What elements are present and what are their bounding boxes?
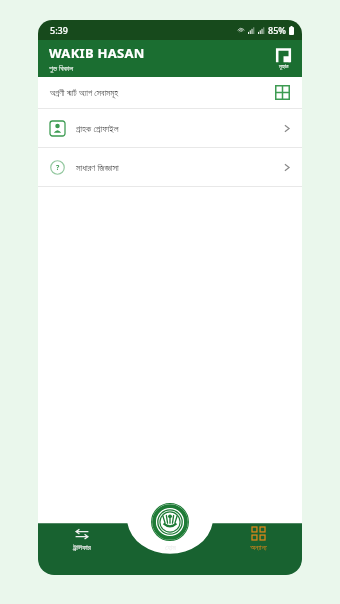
staticText: সাধারণ জিজ্ঞাসা <box>76 161 284 173</box>
button[interactable]: গ্রাহক প্রোফাইল <box>38 109 302 147</box>
button[interactable]: অন্যান্য <box>214 527 302 575</box>
staticText: শুভ বিকাল <box>49 63 73 73</box>
button[interactable]: অগ্রণী স্মার্ট অ্যাপ সেবাসমূহ <box>38 77 302 108</box>
staticText: অন্যান্য <box>250 544 267 552</box>
staticText: 85% <box>268 24 286 36</box>
staticText: হোম <box>165 544 176 552</box>
button[interactable]: Logout <box>274 47 293 70</box>
staticText: WAKIB HASAN <box>49 44 145 62</box>
staticText: মুছার <box>279 63 289 69</box>
button[interactable]: ট্রান্সফার <box>38 527 126 575</box>
button[interactable]: ? <box>38 148 302 186</box>
staticText: 5:39 <box>50 24 68 36</box>
staticText: গ্রাহক প্রোফাইল <box>76 122 284 134</box>
staticText: ? <box>56 163 60 173</box>
staticText: অগ্রণী স্মার্ট অ্যাপ সেবাসমূহ <box>50 87 275 99</box>
button[interactable]: হোম <box>126 527 214 575</box>
staticText: ট্রান্সফার <box>73 544 91 552</box>
